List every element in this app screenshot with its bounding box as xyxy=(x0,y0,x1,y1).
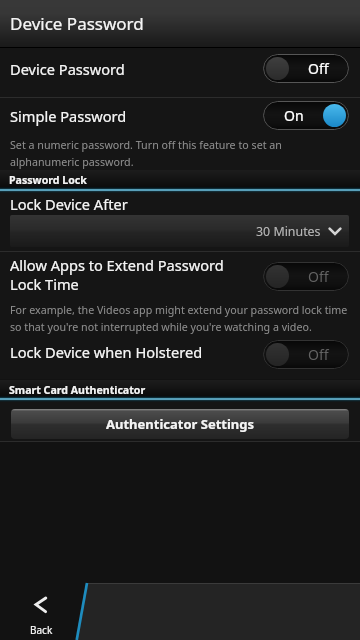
staticText: Off xyxy=(308,59,329,78)
staticText: Set a numeric password. Turn off this fe… xyxy=(10,138,282,169)
button[interactable]: Authenticator Settings xyxy=(11,409,349,439)
button[interactable]: Off xyxy=(263,54,349,83)
button[interactable]: On xyxy=(263,101,349,130)
staticText: Password Lock xyxy=(9,173,87,187)
staticText: Lock Device After xyxy=(10,194,128,214)
staticText: Off xyxy=(308,345,329,364)
button[interactable]: Back xyxy=(0,583,80,640)
staticText: 30 Minutes xyxy=(256,223,321,240)
staticText: Simple Password xyxy=(10,106,127,126)
staticText: On xyxy=(284,106,304,125)
staticText: Smart Card Authenticator xyxy=(9,383,146,397)
button[interactable] xyxy=(0,338,360,379)
button[interactable] xyxy=(0,48,360,97)
staticText: Device Password xyxy=(10,59,125,79)
staticText: Off xyxy=(308,267,329,286)
staticText: Authenticator Settings xyxy=(106,415,255,433)
staticText: For example, the Videos app might extend… xyxy=(10,303,348,334)
staticText: Lock Device when Holstered xyxy=(10,342,203,362)
button[interactable]: Off xyxy=(263,340,349,369)
button[interactable]: Off xyxy=(263,262,349,291)
button[interactable] xyxy=(0,98,360,170)
staticText: Allow Apps to Extend Password Lock Time xyxy=(10,255,224,294)
staticText: Back xyxy=(30,623,53,637)
button[interactable] xyxy=(0,252,360,298)
staticText: Device Password xyxy=(10,12,144,35)
button[interactable]: 30 Minutes xyxy=(10,215,349,247)
